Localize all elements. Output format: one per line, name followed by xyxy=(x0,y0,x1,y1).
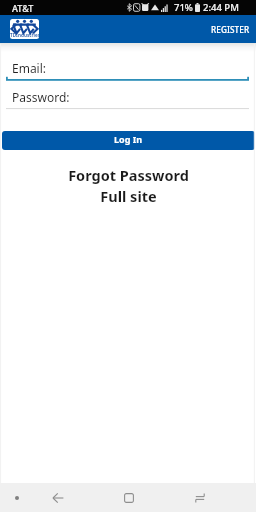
staticText: Email: xyxy=(12,60,47,76)
staticText: Log In xyxy=(114,133,143,145)
button[interactable]: Back xyxy=(36,483,80,512)
button[interactable]: Password: input field xyxy=(0,89,256,111)
button[interactable]: Home xyxy=(107,483,151,512)
button[interactable]: Forgot Password xyxy=(0,165,256,185)
button[interactable]: Log In xyxy=(2,131,255,150)
button[interactable]: Email: input field xyxy=(0,60,256,82)
button[interactable]: REGISTER xyxy=(205,19,256,40)
button[interactable]: Recent apps xyxy=(178,483,222,512)
staticText: Full site xyxy=(100,186,157,206)
button[interactable]: Full site xyxy=(0,186,256,206)
staticText: 2:44 PM xyxy=(203,1,239,14)
staticText: AT&T xyxy=(12,2,34,14)
staticText: Password: xyxy=(12,89,70,105)
staticText: 71% xyxy=(174,1,193,14)
staticText: REGISTER xyxy=(211,24,250,35)
button[interactable]: TDIndustries home xyxy=(10,19,39,39)
staticText: Forgot Password xyxy=(68,165,189,185)
staticText: TDIndustries xyxy=(10,32,39,38)
